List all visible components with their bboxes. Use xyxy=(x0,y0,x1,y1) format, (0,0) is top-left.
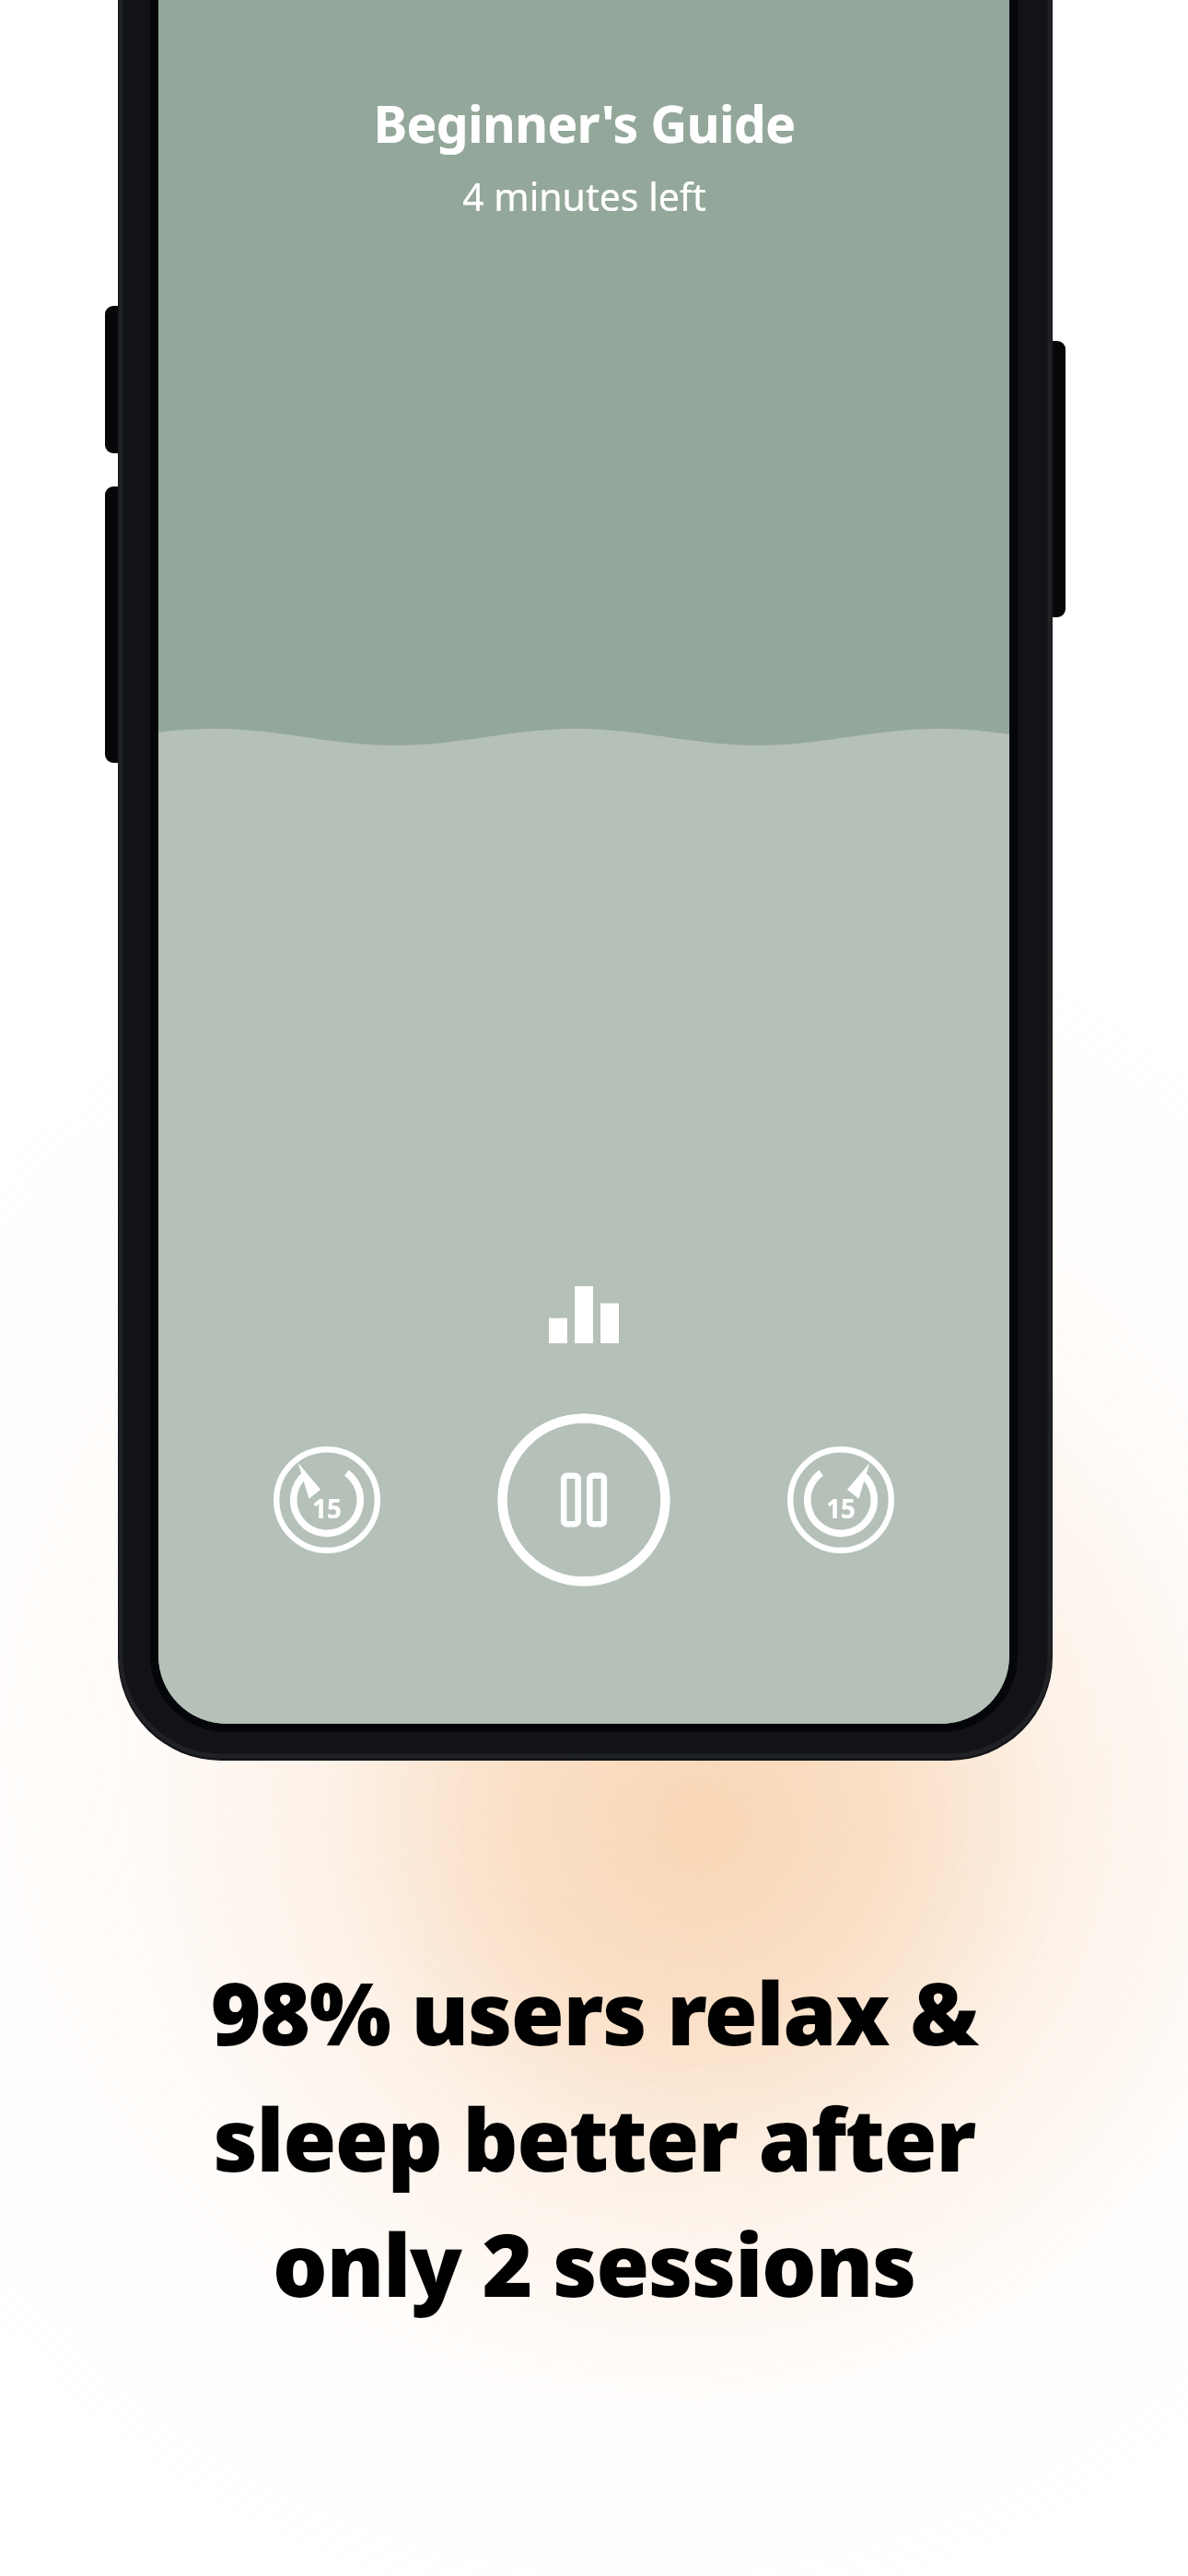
staticText: 98% users relax & sleep better after onl… xyxy=(210,1953,978,2322)
other: Audio levels xyxy=(549,1286,619,1343)
staticText: 4 minutes left xyxy=(462,170,706,222)
staticText: Beginner's Guide xyxy=(373,88,796,158)
staticText: 15 xyxy=(826,1491,856,1526)
staticText: 15 xyxy=(312,1491,342,1526)
button[interactable]: Forward 15 seconds xyxy=(786,1446,895,1554)
button[interactable]: Pause xyxy=(497,1413,670,1587)
button[interactable]: Rewind 15 seconds xyxy=(273,1446,381,1554)
